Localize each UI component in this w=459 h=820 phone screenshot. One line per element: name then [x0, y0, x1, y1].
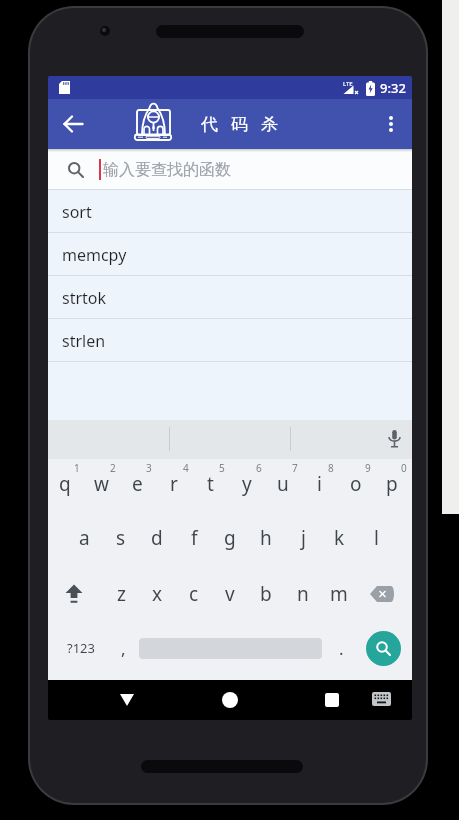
staticText: 7 [292, 461, 298, 475]
staticText: LTE [343, 80, 353, 88]
staticText: x [152, 581, 163, 607]
button[interactable]: j [285, 511, 321, 565]
button[interactable]: a [66, 511, 102, 565]
staticText: d [151, 525, 163, 551]
staticText: o [350, 471, 362, 497]
staticText: sort [62, 201, 92, 223]
staticText: y [242, 471, 252, 497]
staticText: . [339, 637, 344, 660]
staticText: v [225, 581, 235, 607]
button[interactable] [64, 584, 84, 604]
button[interactable]: 输入要查找的函数 [48, 149, 412, 190]
staticText: c [189, 581, 199, 607]
staticText: 6 [256, 461, 262, 475]
button[interactable]: memcpy [48, 233, 412, 276]
button[interactable]: y [229, 457, 265, 511]
button[interactable]: l [358, 511, 394, 565]
button[interactable]: n [285, 567, 321, 621]
staticText: w [94, 471, 109, 497]
button[interactable]: w [83, 457, 119, 511]
staticText: r [170, 471, 178, 497]
button[interactable] [370, 586, 394, 602]
button[interactable] [373, 106, 409, 142]
staticText: 2 [110, 461, 116, 475]
button[interactable]: s [103, 511, 139, 565]
button[interactable]: z [103, 567, 139, 621]
button[interactable]: t [192, 457, 228, 511]
staticText: b [260, 581, 272, 607]
staticText: n [297, 581, 309, 607]
button[interactable] [52, 103, 94, 145]
button[interactable]: ?123 [56, 624, 106, 672]
staticText: a [79, 525, 90, 551]
button[interactable]: e [119, 457, 155, 511]
button[interactable]: m [321, 567, 357, 621]
button[interactable]: o [338, 457, 374, 511]
staticText: 8 [328, 461, 334, 475]
button[interactable]: c [176, 567, 212, 621]
button[interactable]: i [301, 457, 337, 511]
staticText: z [117, 581, 126, 607]
staticText: 码 [231, 114, 248, 135]
staticText: g [224, 525, 236, 551]
staticText: e [132, 471, 143, 497]
staticText: 3 [146, 461, 152, 475]
button[interactable]: h [248, 511, 284, 565]
staticText: , [121, 637, 126, 660]
staticText: 4 [183, 461, 189, 475]
staticText: q [59, 471, 71, 497]
button[interactable]: strtok [48, 276, 412, 319]
button[interactable]: v [212, 567, 248, 621]
staticText: strtok [62, 287, 107, 309]
button[interactable]: g [212, 511, 248, 565]
button[interactable]: q [48, 457, 83, 511]
staticText: 0 [401, 461, 407, 475]
staticText: k [334, 525, 345, 551]
staticText: 代 [201, 114, 218, 135]
button[interactable]: d [139, 511, 175, 565]
staticText: 输入要查找的函数 [103, 160, 231, 180]
staticText: s [116, 525, 126, 551]
staticText: f [191, 525, 198, 551]
staticText: l [374, 525, 379, 551]
button[interactable]: x [139, 567, 175, 621]
staticText: 杀 [261, 114, 278, 135]
button[interactable]: k [321, 511, 357, 565]
staticText: i [317, 471, 322, 497]
button[interactable]: . [328, 624, 354, 672]
button[interactable]: u [265, 457, 301, 511]
button[interactable] [107, 680, 147, 720]
staticText: 9:32 [380, 79, 406, 97]
button[interactable]: , [110, 624, 136, 672]
staticText: ?123 [67, 639, 95, 657]
staticText: j [301, 525, 306, 551]
button[interactable] [388, 430, 401, 449]
staticText: t [207, 471, 214, 497]
staticText: h [260, 525, 272, 551]
staticText: p [386, 471, 398, 497]
button[interactable]: b [248, 567, 284, 621]
staticText: strlen [62, 330, 106, 352]
button[interactable] [312, 680, 352, 720]
staticText: memcpy [62, 244, 127, 266]
button[interactable] [372, 692, 391, 706]
button[interactable]: strlen [48, 319, 412, 362]
button[interactable]: p [374, 457, 410, 511]
staticText: 1 [74, 461, 80, 475]
staticText: u [277, 471, 289, 497]
button[interactable]: sort [48, 190, 412, 233]
button[interactable]: r [156, 457, 192, 511]
button[interactable] [210, 680, 250, 720]
button[interactable] [366, 631, 401, 666]
staticText: 9 [365, 461, 371, 475]
staticText: m [330, 581, 348, 607]
staticText: 5 [219, 461, 225, 475]
button[interactable]: f [176, 511, 212, 565]
